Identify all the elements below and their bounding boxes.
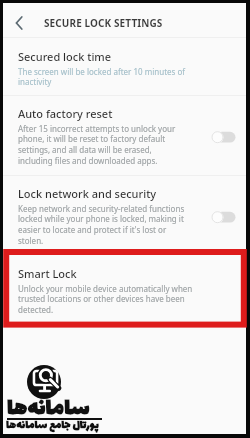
button[interactable]: Toggle Auto factory reset — [209, 128, 239, 147]
staticText: سامانه‌ها — [7, 390, 90, 429]
staticText: The screen will be locked after 10 minut… — [18, 66, 210, 88]
button[interactable]: Smart Lock — [3, 266, 246, 316]
button[interactable]: Toggle Lock network and security — [209, 208, 239, 227]
staticText: Secured lock time — [18, 49, 112, 64]
staticText: پورتال جامع سامانه‌ها — [6, 416, 99, 436]
button[interactable]: Auto factory reset — [3, 106, 246, 167]
button[interactable]: Secured lock time — [3, 49, 246, 88]
staticText: Smart Lock — [18, 266, 77, 281]
staticText: After 15 incorrect attempts to unlock yo… — [18, 123, 188, 167]
staticText: SECURE LOCK SETTINGS — [44, 16, 163, 30]
staticText: Auto factory reset — [18, 106, 113, 121]
staticText: Keep network and security-related functi… — [18, 203, 188, 247]
button[interactable]: Navigate up — [3, 6, 34, 40]
staticText: Unlock your mobile device automatically … — [18, 283, 213, 316]
staticText: Lock network and security — [18, 186, 157, 201]
button[interactable]: Lock network and security — [3, 186, 246, 247]
